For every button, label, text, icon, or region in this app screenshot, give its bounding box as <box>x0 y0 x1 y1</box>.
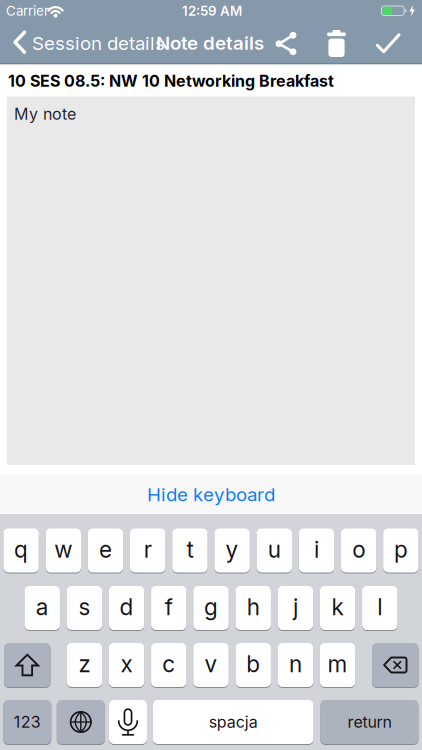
button[interactable]: j <box>278 585 313 630</box>
button[interactable]: p <box>383 528 419 573</box>
button[interactable]: spacja <box>153 699 313 744</box>
button[interactable] <box>326 29 347 58</box>
staticText: i <box>314 536 319 563</box>
staticText: t <box>186 536 193 563</box>
staticText: j <box>293 594 298 620</box>
button[interactable]: c <box>151 642 186 687</box>
button[interactable]: d <box>109 585 144 630</box>
staticText: q <box>14 536 28 563</box>
button[interactable]: Session details <box>0 22 230 64</box>
button[interactable]: e <box>88 528 123 573</box>
staticText: spacja <box>209 713 258 731</box>
staticText: Session details <box>32 32 165 54</box>
staticText: b <box>246 651 260 677</box>
staticText: v <box>204 651 217 677</box>
staticText: m <box>328 651 348 677</box>
button[interactable]: x <box>109 642 144 687</box>
button[interactable]: w <box>46 528 81 573</box>
button[interactable]: o <box>341 528 376 573</box>
button[interactable]: return <box>320 699 418 744</box>
staticText: l <box>377 594 382 620</box>
button[interactable]: 123 <box>3 699 51 744</box>
staticText: c <box>162 651 175 677</box>
staticText: d <box>120 594 134 620</box>
staticText: u <box>268 536 281 563</box>
button[interactable] <box>375 32 401 54</box>
staticText: n <box>289 651 302 677</box>
button[interactable]: Hide keyboard <box>0 475 422 514</box>
staticText: return <box>347 713 391 731</box>
button[interactable]: m <box>320 642 355 687</box>
button[interactable]: u <box>257 528 292 573</box>
button[interactable]: l <box>362 585 397 630</box>
staticText: Note details <box>156 32 264 54</box>
button[interactable]: b <box>235 642 271 687</box>
staticText: 123 <box>14 713 41 731</box>
button[interactable]: h <box>235 585 271 630</box>
staticText: k <box>332 594 344 620</box>
staticText: g <box>204 594 218 620</box>
button[interactable]: y <box>214 528 250 573</box>
staticText: Hide keyboard <box>147 483 275 505</box>
button[interactable] <box>4 642 51 687</box>
staticText: p <box>394 536 408 563</box>
staticText: r <box>144 536 152 563</box>
button[interactable]: f <box>151 585 186 630</box>
button[interactable]: k <box>320 585 355 630</box>
button[interactable]: a <box>24 585 60 630</box>
staticText: z <box>78 651 90 677</box>
button[interactable] <box>57 699 105 744</box>
staticText: 12:59 AM <box>182 3 242 19</box>
button[interactable]: i <box>299 528 334 573</box>
staticText: a <box>36 594 49 620</box>
staticText: s <box>78 594 90 620</box>
button[interactable]: g <box>193 585 229 630</box>
staticText: My note <box>14 104 76 123</box>
button[interactable] <box>372 642 419 687</box>
button[interactable] <box>109 699 147 744</box>
staticText: o <box>352 536 365 563</box>
staticText: Carrier <box>6 3 49 19</box>
staticText: 10 SES 08.5: NW 10 Networking Breakfast <box>8 71 334 90</box>
button[interactable]: n <box>278 642 313 687</box>
button[interactable]: z <box>67 642 102 687</box>
button[interactable]: r <box>130 528 165 573</box>
button[interactable]: v <box>193 642 229 687</box>
button[interactable]: s <box>67 585 102 630</box>
staticText: f <box>165 594 173 620</box>
staticText: h <box>247 594 260 620</box>
button[interactable] <box>273 30 299 56</box>
button[interactable]: q <box>3 528 39 573</box>
staticText: y <box>226 536 239 563</box>
staticText: x <box>121 651 133 677</box>
button[interactable]: t <box>172 528 208 573</box>
staticText: e <box>99 536 112 563</box>
staticText: w <box>54 536 72 563</box>
